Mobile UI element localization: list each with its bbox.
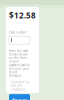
staticText: $12.58 — [9, 10, 36, 21]
staticText: Pay now — [12, 97, 27, 100]
staticText: Card number — [9, 31, 27, 34]
button[interactable]: Pay now — [9, 94, 30, 100]
staticText: Enter the card details shown on the fron… — [9, 49, 30, 77]
staticText: Protected by 256-bit encryption — [10, 80, 28, 91]
